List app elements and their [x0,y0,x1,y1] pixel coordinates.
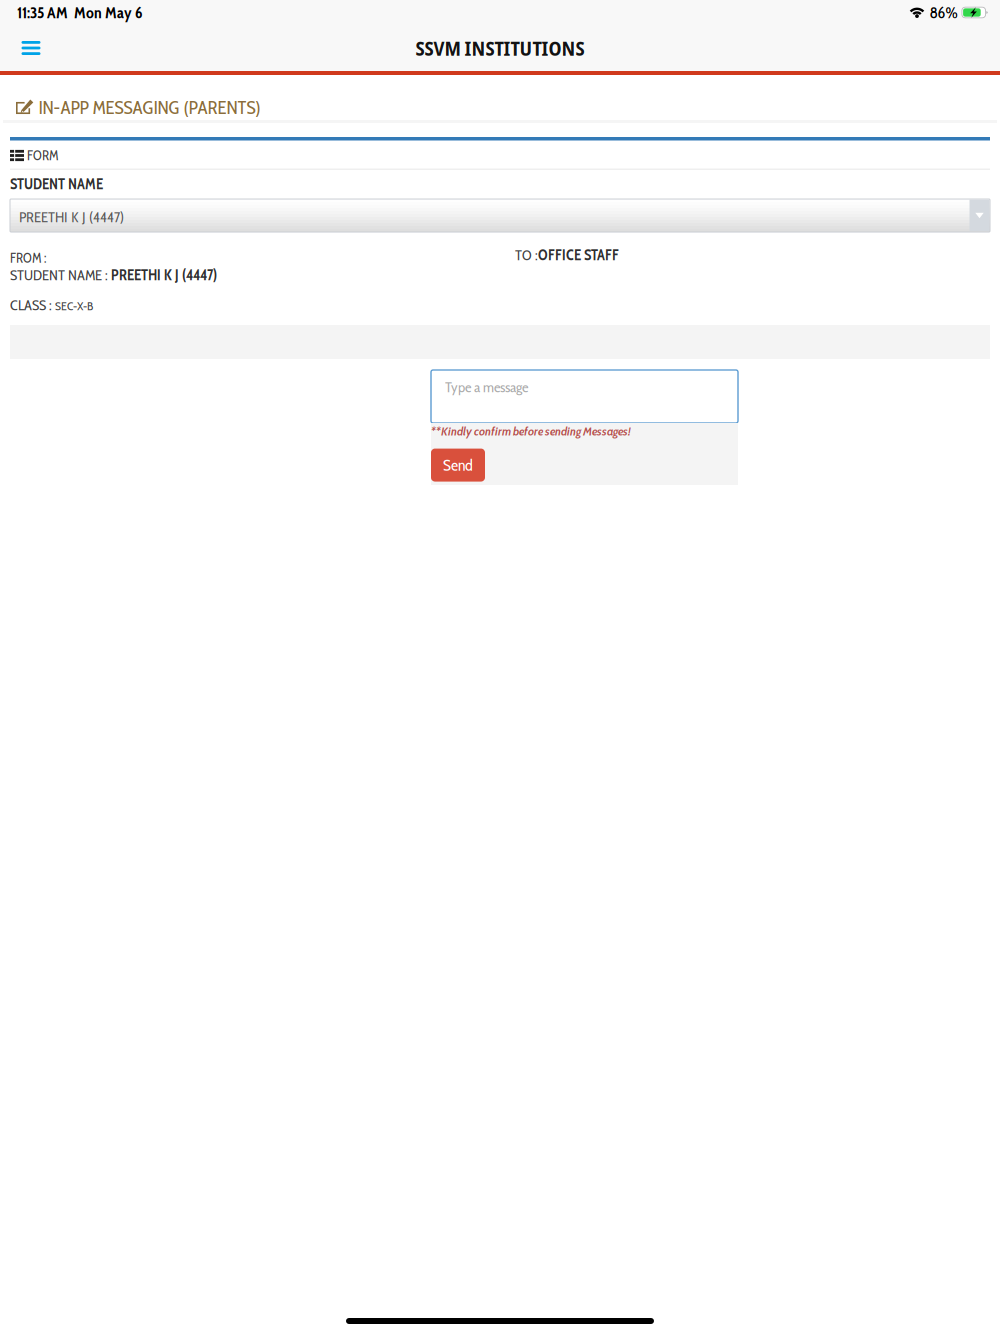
staticText: Send [443,455,473,475]
staticText: SSVM INSTITUTIONS [415,34,584,62]
staticText: TO : [515,246,538,264]
staticText: SEC-X-B [55,299,93,313]
staticText: **Kindly confirm before sending Messages… [431,424,630,439]
staticText: Type a message [445,378,528,396]
button[interactable]: Send [431,449,485,482]
staticText: STUDENT NAME [10,175,103,193]
staticText: CLASS : [10,296,55,314]
staticText: STUDENT NAME : [10,266,111,284]
staticText: Mon May 6 [74,3,142,22]
staticText: 86% [929,3,957,22]
staticText: OFFICE STAFF [538,246,619,264]
staticText: IN-APP MESSAGING (PARENTS) [38,96,260,119]
staticText: PREETHI K J (4447) [111,266,217,284]
staticText: FROM : [10,250,46,266]
staticText: 11:35 AM [17,3,68,22]
button[interactable]: PREETHI K J (4447) [10,199,990,232]
staticText: PREETHI K J (4447) [19,208,124,226]
staticText: FORM [27,147,58,164]
button[interactable]: Menu [9,26,53,70]
